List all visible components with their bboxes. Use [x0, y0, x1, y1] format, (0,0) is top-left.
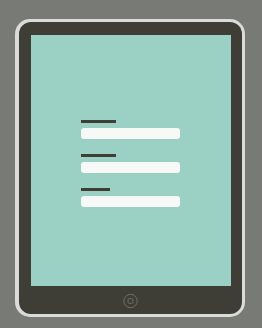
button[interactable] [81, 128, 180, 139]
button[interactable] [81, 196, 180, 207]
button[interactable]: Home [122, 292, 139, 309]
button[interactable] [81, 162, 180, 173]
